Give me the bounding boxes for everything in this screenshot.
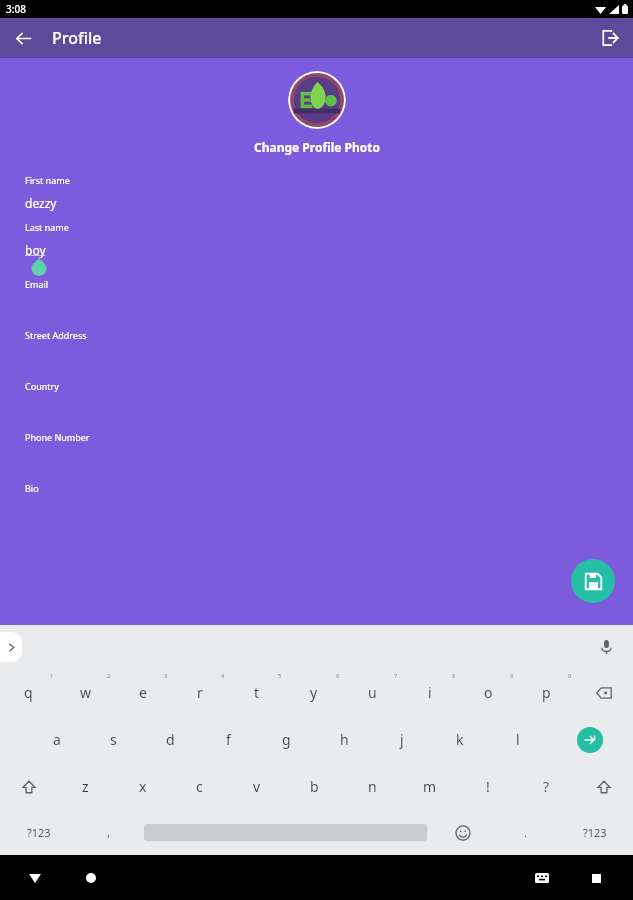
- button[interactable]: More suggestions: [0, 632, 22, 662]
- staticText: w: [80, 683, 92, 702]
- button[interactable]: g: [257, 716, 315, 763]
- staticText: x: [139, 777, 147, 796]
- staticText: 7: [394, 672, 398, 680]
- staticText: Last name: [25, 221, 69, 233]
- staticText: 3:08: [6, 2, 26, 16]
- button[interactable]: c: [171, 763, 228, 810]
- button[interactable]: ?123: [0, 810, 77, 855]
- button[interactable]: u: [343, 669, 401, 716]
- staticText: Bio: [25, 482, 39, 494]
- staticText: y: [310, 683, 318, 702]
- staticText: ?123: [583, 825, 607, 840]
- button[interactable]: y: [285, 669, 343, 716]
- button[interactable]: dezzy: [25, 195, 608, 211]
- staticText: !: [486, 777, 490, 796]
- staticText: g: [282, 730, 291, 749]
- button[interactable]: ,: [77, 810, 140, 855]
- staticText: Profile: [52, 27, 102, 49]
- staticText: s: [110, 730, 117, 749]
- button[interactable]: Country: [25, 380, 608, 392]
- button[interactable]: Save: [571, 559, 615, 603]
- button[interactable]: a: [28, 716, 85, 763]
- button[interactable]: t: [228, 669, 285, 716]
- staticText: 9: [510, 672, 514, 680]
- staticText: ?123: [27, 825, 51, 840]
- staticText: b: [310, 777, 319, 796]
- button[interactable]: Bio: [25, 482, 608, 494]
- staticText: Phone Number: [25, 431, 90, 443]
- button[interactable]: d: [142, 716, 199, 763]
- staticText: ?: [543, 777, 550, 796]
- button[interactable]: Recents: [581, 863, 611, 893]
- staticText: First name: [25, 174, 70, 186]
- button[interactable]: Backspace: [575, 669, 633, 716]
- button[interactable]: b: [285, 763, 343, 810]
- staticText: 5: [278, 672, 282, 680]
- button[interactable]: n: [343, 763, 401, 810]
- button[interactable]: Next: [577, 727, 603, 753]
- button[interactable]: j: [373, 716, 431, 763]
- staticText: 8: [452, 672, 456, 680]
- button[interactable]: !: [459, 763, 517, 810]
- button[interactable]: e: [114, 669, 171, 716]
- button[interactable]: l: [489, 716, 547, 763]
- button[interactable]: Shift: [0, 763, 57, 810]
- button[interactable]: Email: [25, 278, 608, 290]
- button[interactable]: q: [0, 669, 57, 716]
- staticText: dezzy: [25, 195, 57, 211]
- button[interactable]: Switch keyboard: [527, 863, 557, 893]
- button[interactable]: Shift: [575, 763, 633, 810]
- button[interactable]: Voice input: [593, 634, 619, 660]
- staticText: 2: [107, 672, 111, 680]
- button[interactable]: ?: [517, 763, 575, 810]
- button[interactable]: Phone Number: [25, 431, 608, 443]
- button[interactable]: r: [171, 669, 228, 716]
- staticText: 6: [336, 672, 340, 680]
- button[interactable]: Home: [76, 863, 106, 893]
- button[interactable]: Hide keyboard: [20, 863, 50, 893]
- staticText: 1: [50, 672, 54, 680]
- staticText: d: [166, 730, 175, 749]
- button[interactable]: k: [431, 716, 489, 763]
- button[interactable]: Emoji: [431, 810, 494, 855]
- button[interactable]: Change Profile Photo: [248, 137, 386, 157]
- button[interactable]: s: [85, 716, 142, 763]
- button[interactable]: First name: [25, 174, 608, 186]
- staticText: n: [368, 777, 377, 796]
- staticText: .: [524, 825, 527, 840]
- button[interactable]: ?123: [557, 810, 633, 855]
- staticText: l: [516, 730, 520, 749]
- button[interactable]: boy: [25, 242, 608, 276]
- button[interactable]: Back: [8, 23, 38, 53]
- staticText: r: [197, 683, 203, 702]
- staticText: p: [542, 683, 551, 702]
- staticText: Street Address: [25, 329, 87, 341]
- button[interactable]: Profile photo: [288, 71, 346, 129]
- button[interactable]: Log out: [595, 23, 625, 53]
- staticText: Country: [25, 380, 59, 392]
- staticText: Email: [25, 278, 49, 290]
- staticText: 3: [164, 672, 168, 680]
- button[interactable]: Last name: [25, 221, 608, 233]
- staticText: o: [484, 683, 493, 702]
- staticText: v: [253, 777, 261, 796]
- button[interactable]: m: [401, 763, 459, 810]
- button[interactable]: p: [517, 669, 575, 716]
- button[interactable]: z: [57, 763, 114, 810]
- staticText: u: [368, 683, 377, 702]
- staticText: q: [24, 683, 33, 702]
- staticText: h: [340, 730, 349, 749]
- button[interactable]: i: [401, 669, 459, 716]
- staticText: j: [400, 730, 404, 749]
- button[interactable]: v: [228, 763, 285, 810]
- button[interactable]: w: [57, 669, 114, 716]
- button[interactable]: Street Address: [25, 329, 608, 341]
- staticText: t: [254, 683, 260, 702]
- button[interactable]: x: [114, 763, 171, 810]
- button[interactable]: o: [459, 669, 517, 716]
- button[interactable]: f: [199, 716, 257, 763]
- staticText: ,: [107, 825, 110, 840]
- button[interactable]: h: [315, 716, 373, 763]
